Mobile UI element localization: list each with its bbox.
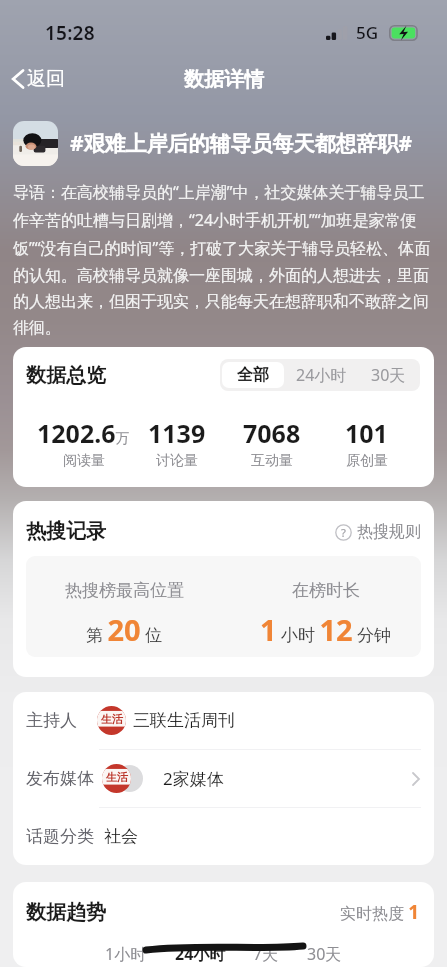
other: 查看发布媒体: [412, 772, 420, 786]
button[interactable]: 24小时: [284, 361, 359, 389]
staticText: 三联生活周刊: [133, 710, 235, 731]
staticText: 2家媒体: [163, 767, 224, 790]
staticText: 在榜时长: [292, 580, 360, 601]
staticText: 热搜规则: [357, 522, 421, 542]
staticText: 发布媒体: [26, 768, 94, 789]
staticText: 1202.6万: [37, 416, 130, 450]
staticText: 热搜记录: [26, 519, 106, 544]
staticText: 1139: [148, 416, 206, 450]
staticText: 社会: [104, 826, 138, 847]
staticText: 实时热度 1: [340, 899, 420, 925]
staticText: 15:28: [45, 20, 95, 46]
staticText: 互动量: [251, 452, 293, 470]
button[interactable]: 话题头像: [13, 121, 58, 166]
staticText: ?: [341, 525, 346, 540]
staticText: #艰难上岸后的辅导员每天都想辞职#: [70, 129, 413, 158]
staticText: 30天: [307, 943, 342, 965]
staticText: 讨论量: [156, 452, 198, 470]
staticText: 7068: [243, 416, 301, 450]
staticText: 生活: [101, 712, 123, 726]
staticText: 24小时: [296, 364, 347, 386]
staticText: 生活: [106, 770, 128, 784]
staticText: 数据趋势: [26, 900, 106, 925]
staticText: 返回: [27, 67, 65, 91]
staticText: 阅读量: [63, 452, 105, 470]
button[interactable]: 发布媒体: [13, 750, 434, 807]
button[interactable]: 30天: [359, 361, 418, 389]
staticText: 1 小时 12 分钟: [260, 610, 392, 649]
other: 热搜规则说明: [335, 524, 352, 541]
staticText: 原创量: [346, 452, 388, 470]
staticText: 数据详情: [184, 67, 264, 92]
staticText: 主持人: [26, 710, 77, 731]
staticText: 7天: [253, 943, 279, 965]
button[interactable]: 热搜规则说明: [335, 522, 421, 542]
staticText: 话题分类: [26, 826, 94, 847]
staticText: 导语：在高校辅导员的“上岸潮”中，社交媒体关于辅导员工作辛苦的吐槽与日剧增，“2…: [13, 181, 434, 338]
staticText: 5G: [356, 21, 379, 44]
button[interactable]: 主持人: [13, 692, 434, 749]
button[interactable]: 返回: [0, 61, 77, 97]
button[interactable]: 话题分类: [13, 808, 434, 865]
button[interactable]: 全部: [222, 362, 284, 388]
staticText: 30天: [371, 364, 406, 386]
staticText: 1小时: [105, 943, 147, 965]
staticText: 数据总览: [26, 363, 106, 388]
staticText: 101: [345, 416, 388, 450]
staticText: 第 20 位: [86, 610, 163, 649]
staticText: 24小时: [175, 943, 226, 965]
staticText: 热搜榜最高位置: [65, 580, 184, 601]
staticText: 全部: [237, 365, 269, 385]
